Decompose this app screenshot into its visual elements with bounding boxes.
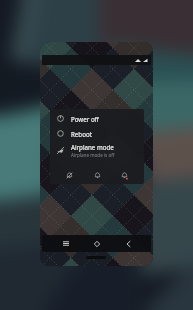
button[interactable]: Vibrate: [90, 168, 105, 183]
button[interactable]: Back: [120, 235, 137, 252]
staticText: Reboot: [71, 130, 92, 138]
staticText: Power off: [71, 115, 99, 123]
staticText: Airplane mode: [71, 143, 114, 151]
button[interactable]: Recent apps: [57, 235, 74, 252]
button[interactable]: Home: [88, 235, 105, 252]
button[interactable]: Airplane mode: [50, 141, 144, 159]
staticText: Airplane mode is off: [71, 152, 115, 158]
button[interactable]: Power off: [50, 111, 144, 126]
button[interactable]: Ring: [117, 168, 132, 183]
button[interactable]: Reboot: [50, 126, 144, 141]
button[interactable]: Silent: [62, 168, 77, 183]
